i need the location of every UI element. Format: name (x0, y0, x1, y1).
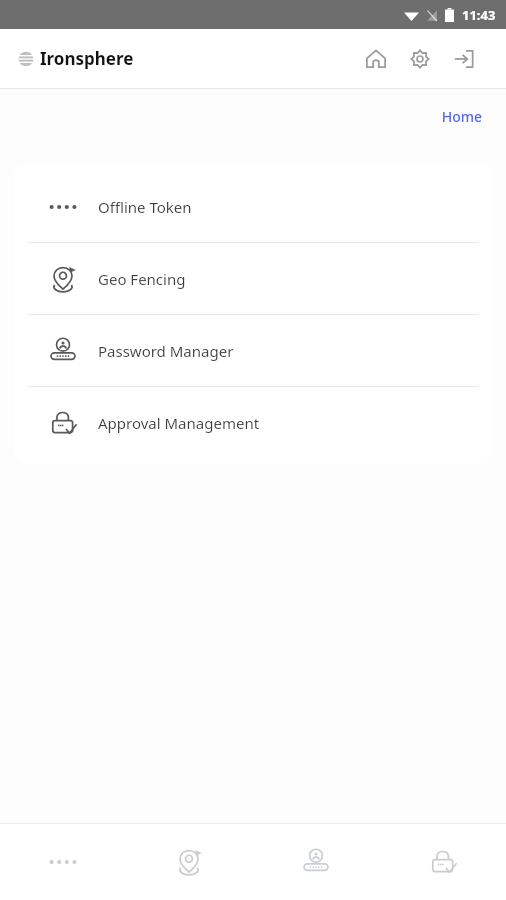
staticText: 11:43 (462, 6, 496, 24)
staticText: Offline Token (98, 197, 192, 217)
button[interactable]: Logout (442, 37, 486, 81)
button[interactable]: Password Manager (252, 824, 379, 900)
button[interactable]: Geo Fencing (126, 824, 252, 900)
button[interactable]: Home (435, 101, 488, 132)
staticText: Home (441, 107, 482, 126)
button[interactable]: Home (354, 37, 398, 81)
staticText: Approval Management (98, 413, 260, 433)
button[interactable]: Approval Management (14, 387, 492, 458)
staticText: Geo Fencing (98, 269, 186, 289)
button[interactable]: Approval Management (379, 824, 506, 900)
button[interactable]: Offline Token (0, 824, 126, 900)
staticText: Password Manager (98, 341, 234, 361)
button[interactable]: Offline Token (14, 171, 492, 242)
button[interactable]: Geo Fencing (14, 243, 492, 314)
staticText: Ironsphere (40, 47, 134, 70)
button[interactable]: Settings (398, 37, 442, 81)
button[interactable]: Password Manager (14, 315, 492, 386)
